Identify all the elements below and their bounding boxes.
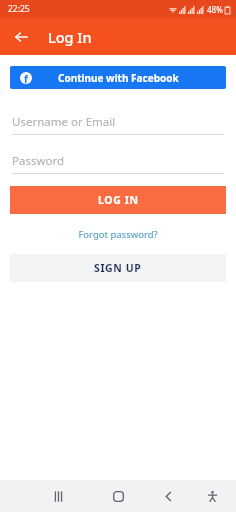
button[interactable]: Back xyxy=(6,22,36,52)
staticText: Log In xyxy=(48,27,92,47)
staticText: Continue with Facebook xyxy=(58,71,179,85)
button[interactable]: Password xyxy=(12,153,224,174)
button[interactable]: Home xyxy=(104,482,132,510)
staticText: Password xyxy=(12,153,65,169)
button[interactable]: Username or Email xyxy=(12,114,224,135)
button[interactable]: Forgot password? xyxy=(72,226,164,243)
button[interactable]: Recents xyxy=(44,482,72,510)
staticText: 22:25 xyxy=(8,3,30,15)
button[interactable]: f xyxy=(10,66,226,89)
staticText: SIGN UP xyxy=(94,261,142,275)
staticText: Username or Email xyxy=(12,114,116,130)
button[interactable]: Accessibility xyxy=(198,482,226,510)
staticText: f xyxy=(24,72,28,84)
button[interactable]: LOG IN xyxy=(10,186,226,214)
button[interactable]: Back xyxy=(154,482,182,510)
button[interactable]: SIGN UP xyxy=(10,254,226,282)
staticText: 48% xyxy=(207,4,223,15)
staticText: LOG IN xyxy=(98,193,139,207)
staticText: Forgot password? xyxy=(78,228,158,241)
